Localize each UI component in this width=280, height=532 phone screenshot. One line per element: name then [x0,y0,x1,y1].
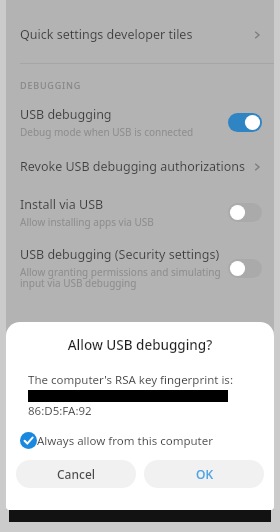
button[interactable]: USB debugging (Security settings) [6,244,274,292]
staticText: Quick settings developer tiles [20,26,252,43]
button[interactable]: Revoke USB debugging authorizations [6,154,274,179]
button[interactable]: Install via USB [6,194,274,231]
staticText: Install via USB [20,196,104,213]
staticText: Allow granting permissions and simulatin… [20,265,221,290]
staticText: USB debugging [20,106,112,123]
staticText: Always allow from this computer [37,433,214,449]
button[interactable]: USB debugging [6,104,274,141]
button[interactable]: OK [144,460,264,488]
button[interactable]: Install via USB disabled [228,203,262,222]
button[interactable]: Quick settings developer tiles [6,14,274,63]
staticText: Allow installing apps via USB [20,215,154,229]
staticText: Allow USB debugging? [6,336,274,354]
button[interactable]: Always allow from this computer [20,432,260,449]
button[interactable]: USB debugging enabled [228,113,262,132]
staticText: Cancel [57,466,96,482]
staticText: USB debugging (Security settings) [20,246,220,263]
staticText: Revoke USB debugging authorizations [20,158,252,175]
staticText: OK [196,466,213,482]
button[interactable]: USB debugging (Security settings) disabl… [228,259,262,278]
staticText: Debug mode when USB is connected [20,125,194,139]
staticText: DEBUGGING [20,79,82,91]
button[interactable]: Cancel [16,460,136,488]
staticText: The computer's RSA key fingerprint is: [28,372,233,388]
staticText: 86:D5:FA:92 [28,403,92,419]
